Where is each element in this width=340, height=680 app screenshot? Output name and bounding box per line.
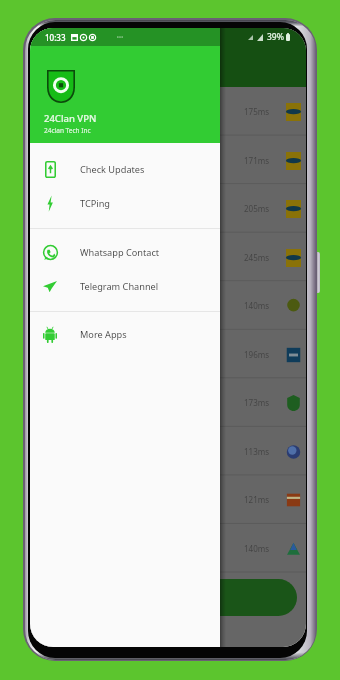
- staticText: TCPing: [80, 197, 110, 210]
- button[interactable]: 205ms: [30, 184, 306, 233]
- button[interactable]: 140ms: [30, 281, 306, 330]
- staticText: 24Clan VPN: [44, 112, 97, 125]
- staticText: 175ms: [244, 106, 270, 117]
- staticText: Telegram Channel: [80, 280, 159, 293]
- staticText: 173ms: [244, 397, 270, 408]
- staticText: 113ms: [244, 446, 270, 457]
- staticText: Check Updates: [80, 163, 145, 176]
- staticText: 121ms: [244, 494, 270, 505]
- staticText: 10:33: [45, 32, 66, 43]
- button[interactable]: Connect: [39, 579, 297, 616]
- button[interactable]: 175ms: [30, 87, 306, 136]
- button[interactable]: 171ms: [30, 136, 306, 185]
- button[interactable]: 113ms: [30, 427, 306, 476]
- button[interactable]: More Apps: [30, 317, 220, 351]
- staticText: 39%: [267, 31, 284, 43]
- staticText: 196ms: [244, 349, 270, 360]
- button[interactable]: TCPing: [30, 186, 220, 220]
- staticText: 24clan Tech Inc: [44, 126, 91, 135]
- button[interactable]: 121ms: [30, 475, 306, 524]
- staticText: Whatsapp Contact: [80, 246, 160, 259]
- button[interactable]: 196ms: [30, 330, 306, 379]
- staticText: 205ms: [244, 203, 270, 214]
- button[interactable]: 173ms: [30, 378, 306, 427]
- button[interactable]: Whatsapp Contact: [30, 235, 220, 269]
- staticText: 245ms: [244, 252, 270, 263]
- button[interactable]: Check Updates: [30, 152, 220, 186]
- staticText: 171ms: [244, 155, 270, 166]
- button[interactable]: 140ms: [30, 524, 306, 573]
- staticText: 140ms: [244, 300, 270, 311]
- staticText: 140ms: [244, 543, 270, 554]
- button[interactable]: 245ms: [30, 233, 306, 282]
- button[interactable]: Telegram Channel: [30, 269, 220, 303]
- staticText: More Apps: [80, 328, 127, 341]
